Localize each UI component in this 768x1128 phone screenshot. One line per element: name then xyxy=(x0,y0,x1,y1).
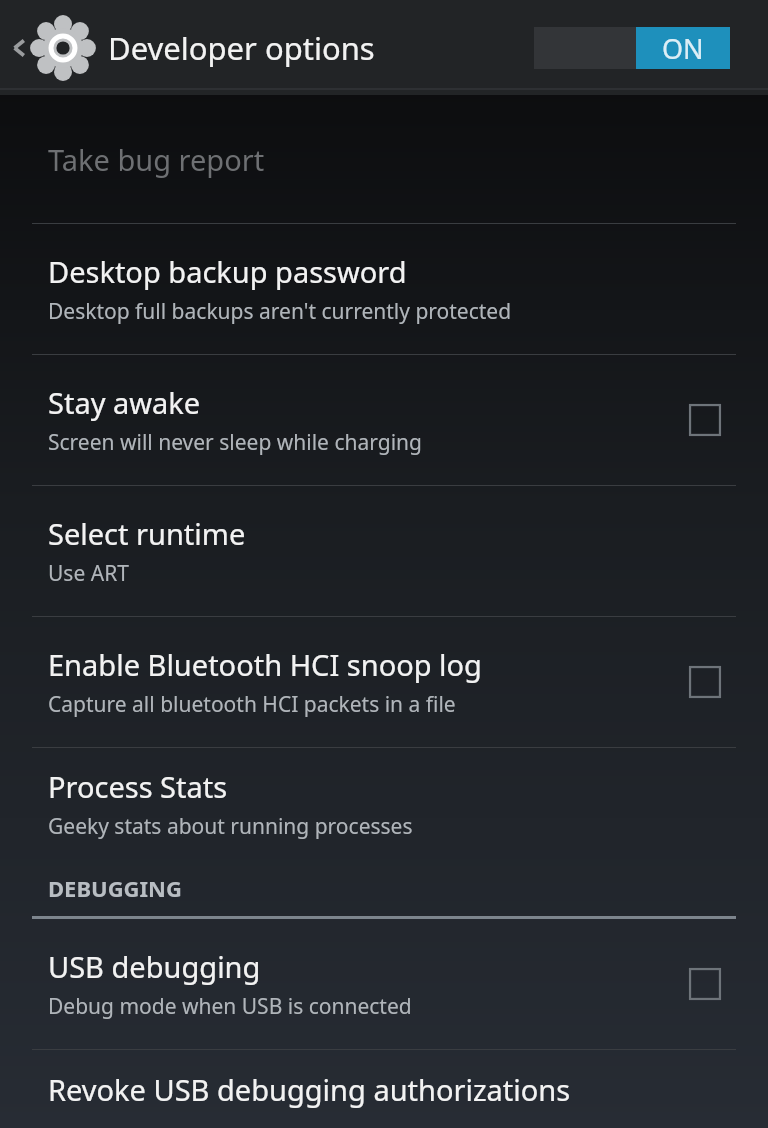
staticText: Developer options xyxy=(108,27,375,69)
button[interactable]: Desktop backup password xyxy=(0,224,768,354)
button[interactable]: USB debugging xyxy=(678,957,732,1011)
staticText: Stay awake xyxy=(48,383,201,422)
button[interactable]: Stay awake xyxy=(678,393,732,447)
button[interactable]: Enable Bluetooth HCI snoop log xyxy=(0,617,768,747)
staticText: Desktop backup password xyxy=(48,252,407,291)
button[interactable]: Revoke USB debugging authorizations xyxy=(0,1050,768,1128)
staticText: Geeky stats about running processes xyxy=(48,812,413,841)
staticText: Debug mode when USB is connected xyxy=(48,992,412,1021)
staticText: Take bug report xyxy=(48,140,265,179)
button[interactable]: Enable Bluetooth HCI snoop log xyxy=(678,655,732,709)
staticText: Revoke USB debugging authorizations xyxy=(48,1070,571,1109)
button[interactable]: USB debugging xyxy=(0,919,768,1049)
staticText: Process Stats xyxy=(48,767,228,806)
staticText: Use ART xyxy=(48,559,129,588)
button[interactable]: Select runtime xyxy=(0,486,768,616)
staticText: Screen will never sleep while charging xyxy=(48,428,422,457)
button[interactable]: Stay awake xyxy=(0,355,768,485)
staticText: Desktop full backups aren't currently pr… xyxy=(48,297,512,326)
button[interactable]: Process Stats xyxy=(0,748,768,860)
staticText: Select runtime xyxy=(48,514,246,553)
button[interactable]: Back xyxy=(0,19,96,77)
button[interactable]: Take bug report xyxy=(0,95,768,223)
staticText: Enable Bluetooth HCI snoop log xyxy=(48,645,482,684)
staticText: DEBUGGING xyxy=(48,873,182,903)
staticText: ON xyxy=(662,30,704,67)
staticText: USB debugging xyxy=(48,947,261,986)
button[interactable]: Developer options on xyxy=(534,27,730,69)
staticText: Capture all bluetooth HCI packets in a f… xyxy=(48,690,456,719)
